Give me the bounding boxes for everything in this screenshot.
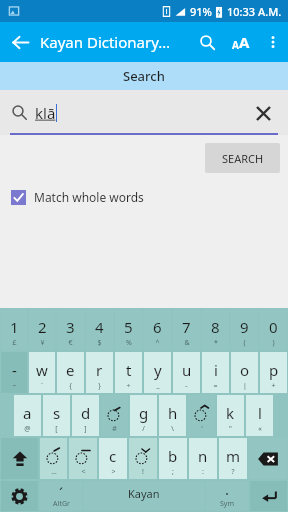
staticText: Kayan xyxy=(128,486,160,501)
button[interactable]: k xyxy=(217,395,244,436)
staticText: Kayan Dictionary… xyxy=(40,32,190,52)
staticText: % xyxy=(126,338,132,348)
staticText: ^ xyxy=(155,338,160,348)
staticText: { xyxy=(69,381,72,391)
button[interactable]: # xyxy=(101,395,128,436)
button[interactable]: Back xyxy=(0,22,40,62)
button[interactable]: 0 xyxy=(260,309,287,350)
button[interactable]: y xyxy=(144,352,171,393)
staticText: b xyxy=(168,446,178,466)
button[interactable]: u xyxy=(173,352,200,393)
button[interactable]: 1 xyxy=(1,309,27,350)
staticText: w xyxy=(36,360,48,380)
staticText: h xyxy=(168,403,178,423)
button[interactable]: Backspace xyxy=(249,438,287,479)
button[interactable]: a xyxy=(14,395,41,436)
staticText: - xyxy=(12,360,17,380)
button[interactable]: i xyxy=(202,352,229,393)
staticText: k xyxy=(226,403,235,423)
button[interactable]: w xyxy=(29,352,55,393)
button[interactable]: Search xyxy=(190,25,224,59)
button[interactable]: 7 xyxy=(173,309,200,350)
staticText: ` xyxy=(41,381,43,391)
staticText: 6 xyxy=(153,317,162,337)
button[interactable]: d xyxy=(72,395,99,436)
button[interactable]: 5 xyxy=(115,309,142,350)
staticText: o xyxy=(240,360,250,380)
staticText: ´ xyxy=(59,483,64,503)
staticText: u xyxy=(182,360,192,380)
button[interactable]: h xyxy=(159,395,186,436)
button[interactable]: r xyxy=(86,352,113,393)
button[interactable]: 8 xyxy=(202,309,229,350)
staticText: e xyxy=(66,360,75,380)
button[interactable]: n xyxy=(189,438,217,479)
staticText: _ xyxy=(156,381,160,391)
button[interactable]: ´ xyxy=(40,481,82,511)
button[interactable]: 6 xyxy=(144,309,171,350)
button[interactable]: c xyxy=(99,438,127,479)
staticText: 4 xyxy=(95,317,104,337)
staticText: ) xyxy=(272,338,275,348)
button[interactable]: - xyxy=(1,352,27,393)
button[interactable]: o xyxy=(231,352,258,393)
staticText: 7 xyxy=(182,317,191,337)
button[interactable]: Match whole words xyxy=(11,180,288,214)
button[interactable]: 2 xyxy=(29,309,55,350)
staticText: & xyxy=(184,338,190,348)
button[interactable]: Clear xyxy=(250,100,276,126)
button[interactable]: Text size xyxy=(224,25,258,59)
staticText: d xyxy=(81,403,91,423)
staticText: ] xyxy=(84,424,87,434)
button[interactable]: … xyxy=(40,438,67,479)
button[interactable]: ! xyxy=(129,438,157,479)
button[interactable]: p xyxy=(260,352,287,393)
staticText: ! xyxy=(142,467,144,477)
staticText: 0 xyxy=(269,317,278,337)
staticText: ÷ xyxy=(126,381,131,391)
staticText: 3 xyxy=(66,317,75,337)
staticText: " xyxy=(229,424,232,434)
staticText: A xyxy=(232,38,239,52)
button[interactable]: Shift xyxy=(1,438,38,479)
button[interactable]: Settings xyxy=(1,481,38,511)
button[interactable]: More options xyxy=(258,27,288,57)
staticText: - xyxy=(185,381,188,391)
staticText: p xyxy=(269,360,279,380)
button[interactable]: · xyxy=(206,481,248,511)
staticText: Match whole words xyxy=(34,189,144,205)
button[interactable]: Enter xyxy=(250,481,287,511)
button[interactable]: b xyxy=(159,438,187,479)
button[interactable]: s xyxy=(43,395,70,436)
staticText: / xyxy=(142,424,145,434)
button[interactable]: e xyxy=(57,352,84,393)
button[interactable]: g xyxy=(130,395,157,436)
staticText: n xyxy=(198,446,208,466)
staticText: | xyxy=(243,381,247,391)
button[interactable]: 9 xyxy=(231,309,258,350)
staticText: ¥ xyxy=(40,338,45,348)
button[interactable]: < xyxy=(69,438,97,479)
staticText: … xyxy=(51,467,57,477)
staticText: t xyxy=(126,360,132,380)
button[interactable]: SEARCH xyxy=(205,143,280,173)
button[interactable]: m xyxy=(219,438,247,479)
staticText: * xyxy=(214,338,218,348)
button[interactable]: l xyxy=(246,395,273,436)
staticText: l xyxy=(258,403,262,423)
staticText: 1 xyxy=(10,317,19,337)
staticText: 10:33 A.M. xyxy=(227,4,282,19)
staticText: 2 xyxy=(38,317,47,337)
staticText: klā xyxy=(35,103,56,123)
staticText: c xyxy=(109,446,117,466)
button[interactable]: t xyxy=(115,352,142,393)
staticText: g xyxy=(139,403,149,423)
button[interactable]: Kayan xyxy=(84,481,204,511)
button[interactable]: 4 xyxy=(86,309,113,350)
staticText: 9 xyxy=(240,317,249,337)
button[interactable]: 3 xyxy=(57,309,84,350)
staticText: ; xyxy=(172,467,174,477)
button[interactable]: ' xyxy=(188,395,215,436)
staticText: £ xyxy=(12,338,17,348)
staticText: « xyxy=(258,424,262,434)
